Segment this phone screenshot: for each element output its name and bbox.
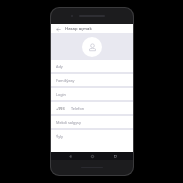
staticText: Telefon [71,106,85,111]
button[interactable]: Login [51,88,133,100]
button[interactable]: +993 [51,102,133,114]
staticText: +993 [56,106,65,111]
staticText: Ady [56,64,63,69]
staticText: Login [56,92,66,97]
button[interactable]: Home [88,152,96,160]
button[interactable]: Ýyly [51,130,133,142]
button[interactable]: Familiýasy [51,74,133,86]
staticText: Familiýasy [56,78,75,83]
staticText: Mekdi salgysy [56,120,81,125]
button[interactable]: Recents [111,152,119,160]
button[interactable]: Mekdi salgysy [51,116,133,128]
button[interactable]: Change profile photo [82,37,102,57]
staticText: Ýyly [56,134,64,139]
button[interactable]: Ady [51,60,133,72]
button[interactable]: Back [54,25,62,33]
staticText: Hasap açmak [65,26,92,32]
button[interactable]: Back [66,152,74,160]
